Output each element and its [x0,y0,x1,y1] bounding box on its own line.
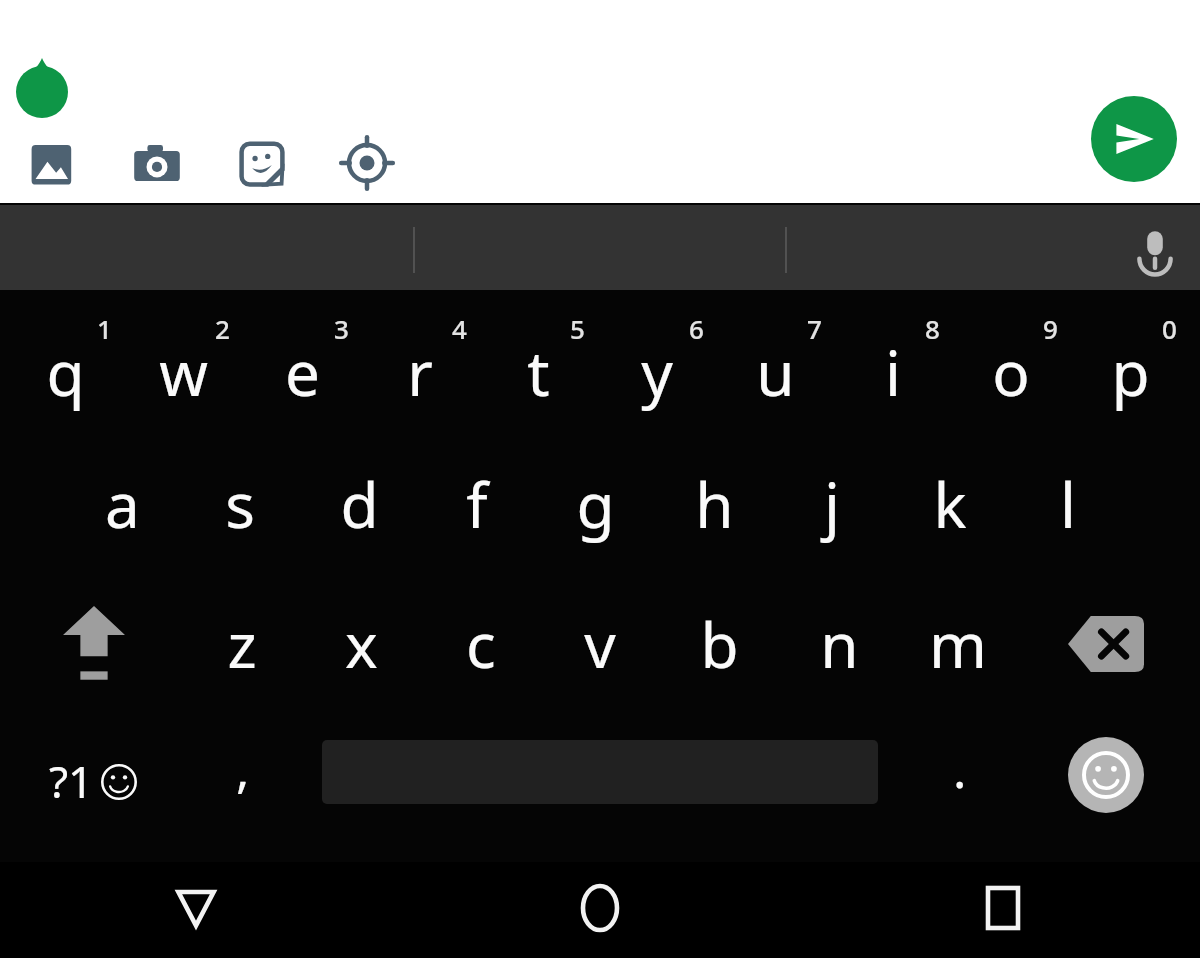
button[interactable]: j [773,445,891,563]
button[interactable]: w [124,300,242,415]
button[interactable]: Location [337,133,397,193]
staticText: 7 [807,311,822,346]
button[interactable]: h [655,445,773,563]
staticText: r [407,330,433,414]
staticText: v [584,602,616,686]
staticText: u [756,330,795,414]
staticText: d [340,462,379,546]
staticText: t [527,330,550,414]
staticText: 4 [452,311,467,346]
button[interactable]: z [183,585,301,703]
button[interactable]: i [834,300,952,415]
button[interactable]: , [185,726,300,836]
button[interactable]: k [891,445,1009,563]
button[interactable]: e [243,300,361,415]
staticText: 1 [97,311,112,346]
staticText: q [46,330,85,414]
button[interactable]: Stickers [232,133,292,193]
button[interactable]: Backspace [1046,585,1166,703]
staticText: i [885,330,901,414]
button[interactable]: Message color [16,58,68,118]
staticText: w [159,330,208,414]
button[interactable]: d [300,445,418,563]
button[interactable]: Camera [127,133,187,193]
button[interactable]: Emoji [1068,737,1144,813]
staticText: 0 [1162,311,1177,346]
button[interactable]: g [536,445,654,563]
staticText: z [227,602,257,686]
button[interactable]: p [1071,300,1189,415]
staticText: k [933,462,967,546]
staticText: c [466,602,496,686]
staticText: n [820,602,859,686]
button[interactable]: c [422,585,540,703]
staticText: 6 [689,311,704,346]
staticText: 8 [925,311,940,346]
staticText: h [695,462,734,546]
staticText: . [953,735,967,803]
staticText: ?1 [49,751,94,811]
staticText: m [929,602,987,686]
button[interactable]: b [660,585,778,703]
staticText: y [641,330,673,414]
button[interactable]: x [302,585,420,703]
button[interactable]: o [952,300,1070,415]
button[interactable]: l [1009,445,1127,563]
button[interactable]: u [716,300,834,415]
staticText: b [700,602,739,686]
button[interactable]: Gallery [22,133,82,193]
button[interactable]: Voice input [1125,218,1185,278]
button[interactable]: Recent apps [963,868,1043,948]
staticText: f [466,462,488,546]
staticText: o [992,330,1030,414]
staticText: e [285,330,320,414]
button[interactable]: n [780,585,898,703]
button[interactable]: Send [1091,96,1177,182]
button[interactable]: v [541,585,659,703]
staticText: j [824,462,840,546]
staticText: 3 [334,311,349,346]
staticText: x [345,602,378,686]
staticText: p [1111,330,1150,414]
button[interactable]: f [418,445,536,563]
button[interactable]: . [905,726,1015,836]
button[interactable]: Back [156,868,236,948]
staticText: , [236,735,250,803]
staticText: s [225,462,255,546]
button[interactable]: m [899,585,1017,703]
button[interactable]: t [479,300,597,415]
button[interactable]: y [598,300,716,415]
button[interactable]: Shift [34,585,154,703]
button[interactable]: s [181,445,299,563]
button[interactable]: Symbols [30,726,160,836]
button[interactable]: Home [560,868,640,948]
staticText: 5 [570,311,585,346]
button[interactable]: a [63,445,181,563]
button[interactable]: q [6,300,124,415]
button[interactable]: r [361,300,479,415]
staticText: a [105,462,140,546]
staticText: 2 [215,311,230,346]
staticText: g [576,462,615,546]
staticText: l [1060,462,1076,546]
staticText: 9 [1043,311,1058,346]
